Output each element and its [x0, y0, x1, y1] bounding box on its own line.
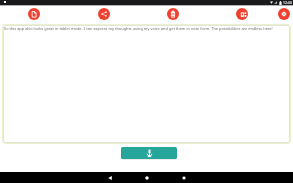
button[interactable]: Keyboard input: [236, 8, 248, 20]
button[interactable]: Back: [94, 172, 125, 183]
button[interactable]: Share note: [98, 8, 110, 20]
button[interactable]: Settings: [278, 8, 290, 20]
button[interactable]: Home: [131, 172, 162, 183]
button[interactable]: New note: [28, 8, 40, 20]
staticText: 12:44: [283, 0, 292, 5]
button[interactable]: Recent apps: [168, 172, 199, 183]
staticText: So this app also looks great in tablet m…: [4, 26, 273, 31]
button[interactable]: Record voice note: [121, 147, 177, 159]
button[interactable]: All notes: [167, 8, 179, 20]
